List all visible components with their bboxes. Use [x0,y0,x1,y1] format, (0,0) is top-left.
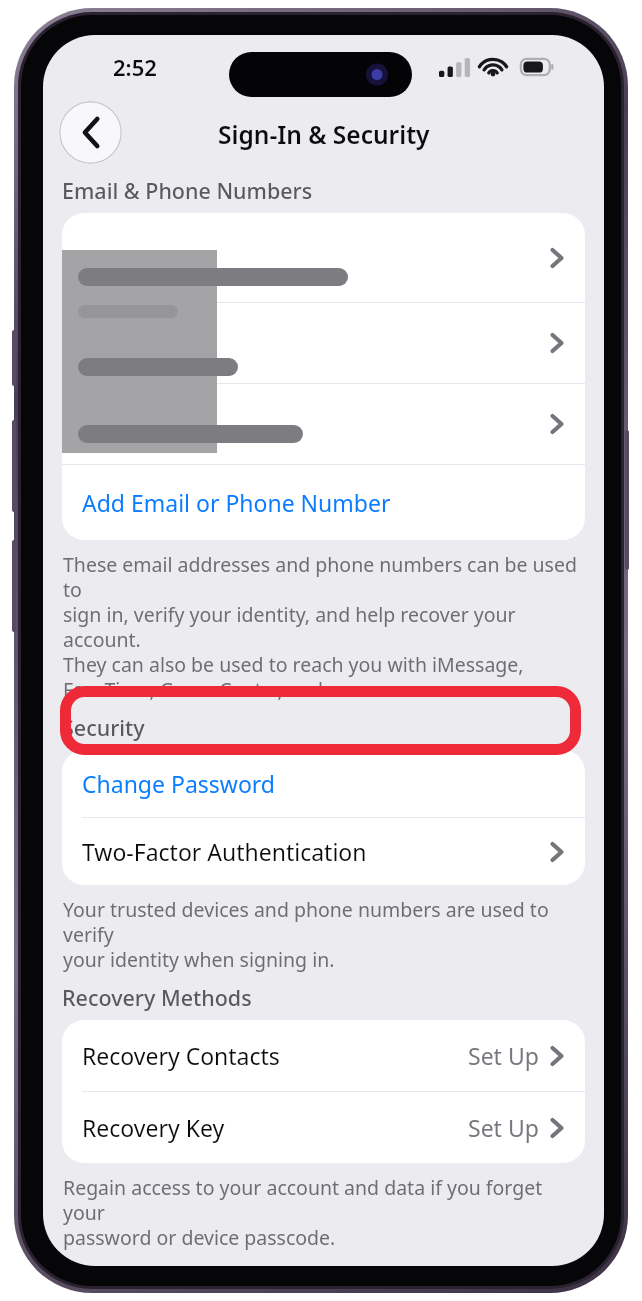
staticText: Sign-In & Security [218,118,430,151]
staticText: Recovery Key [82,1112,468,1143]
button[interactable] [62,384,585,464]
button[interactable]: Change Password [62,750,585,817]
staticText: Security [62,713,145,742]
button[interactable]: Recovery Key [62,1092,585,1163]
button[interactable]: Add Email or Phone Number [62,465,585,540]
button[interactable]: Two-Factor Authentication [62,818,585,885]
staticText: 2:52 [113,52,157,82]
button[interactable]: Recovery Contacts [62,1020,585,1091]
button[interactable]: Back [59,101,122,164]
staticText: Change Password [82,768,275,799]
staticText: Two-Factor Authentication [82,836,551,867]
staticText: Set Up [468,1040,539,1071]
staticText: Add Email or Phone Number [82,487,391,518]
button[interactable] [62,213,585,302]
staticText: Recovery Methods [62,983,252,1012]
staticText: Your trusted devices and phone numbers a… [63,896,586,972]
button[interactable] [62,303,585,383]
staticText: These email addresses and phone numbers … [63,551,586,702]
staticText: Recovery Contacts [82,1040,468,1071]
staticText: Email & Phone Numbers [62,176,313,205]
staticText: Regain access to your account and data i… [63,1174,586,1250]
staticText: Set Up [468,1112,539,1143]
